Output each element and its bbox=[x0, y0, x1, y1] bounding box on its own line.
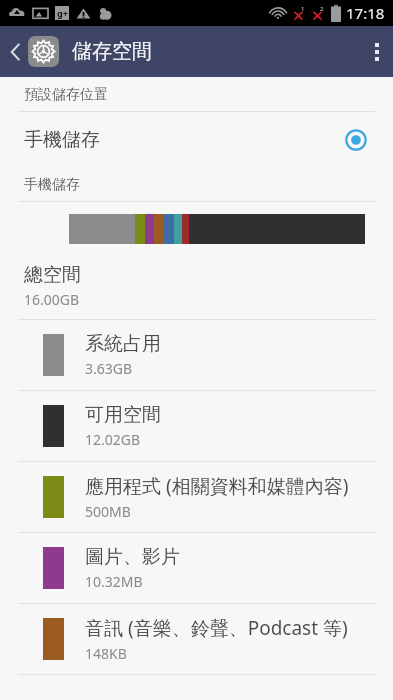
button[interactable]: 音訊 (音樂、鈴聲、Podcast 等) bbox=[0, 604, 393, 674]
staticText: 預設儲存位置 bbox=[24, 86, 108, 104]
staticText: g+ bbox=[57, 7, 68, 19]
button[interactable]: Back bbox=[0, 28, 63, 75]
button[interactable]: 應用程式 (相關資料和媒體內容) bbox=[0, 462, 393, 532]
staticText: 10.32MB bbox=[85, 572, 143, 591]
staticText: 1 bbox=[301, 5, 305, 13]
button[interactable]: 系統占用 bbox=[0, 320, 393, 390]
staticText: 圖片、影片 bbox=[85, 545, 180, 569]
staticText: 148KB bbox=[85, 644, 127, 663]
button[interactable]: More options bbox=[361, 33, 393, 71]
staticText: 16.00GB bbox=[24, 290, 80, 309]
button[interactable]: 手機儲存 bbox=[0, 112, 393, 168]
staticText: 音訊 (音樂、鈴聲、Podcast 等) bbox=[85, 615, 348, 641]
staticText: 手機儲存 bbox=[24, 176, 80, 194]
staticText: 17:18 bbox=[346, 3, 385, 23]
staticText: 500MB bbox=[85, 502, 131, 521]
button[interactable]: 總空間 bbox=[0, 255, 393, 319]
staticText: 手機儲存 bbox=[24, 128, 345, 152]
staticText: 系統占用 bbox=[85, 332, 161, 356]
staticText: 可用空間 bbox=[85, 403, 161, 427]
staticText: 12.02GB bbox=[85, 430, 141, 449]
button[interactable]: 圖片、影片 bbox=[0, 533, 393, 603]
button[interactable]: 可用空間 bbox=[0, 391, 393, 461]
staticText: 總空間 bbox=[24, 263, 81, 287]
staticText: 儲存空間 bbox=[72, 39, 152, 64]
staticText: 應用程式 (相關資料和媒體內容) bbox=[85, 473, 349, 499]
staticText: 2 bbox=[320, 5, 324, 13]
staticText: 3.63GB bbox=[85, 359, 133, 378]
